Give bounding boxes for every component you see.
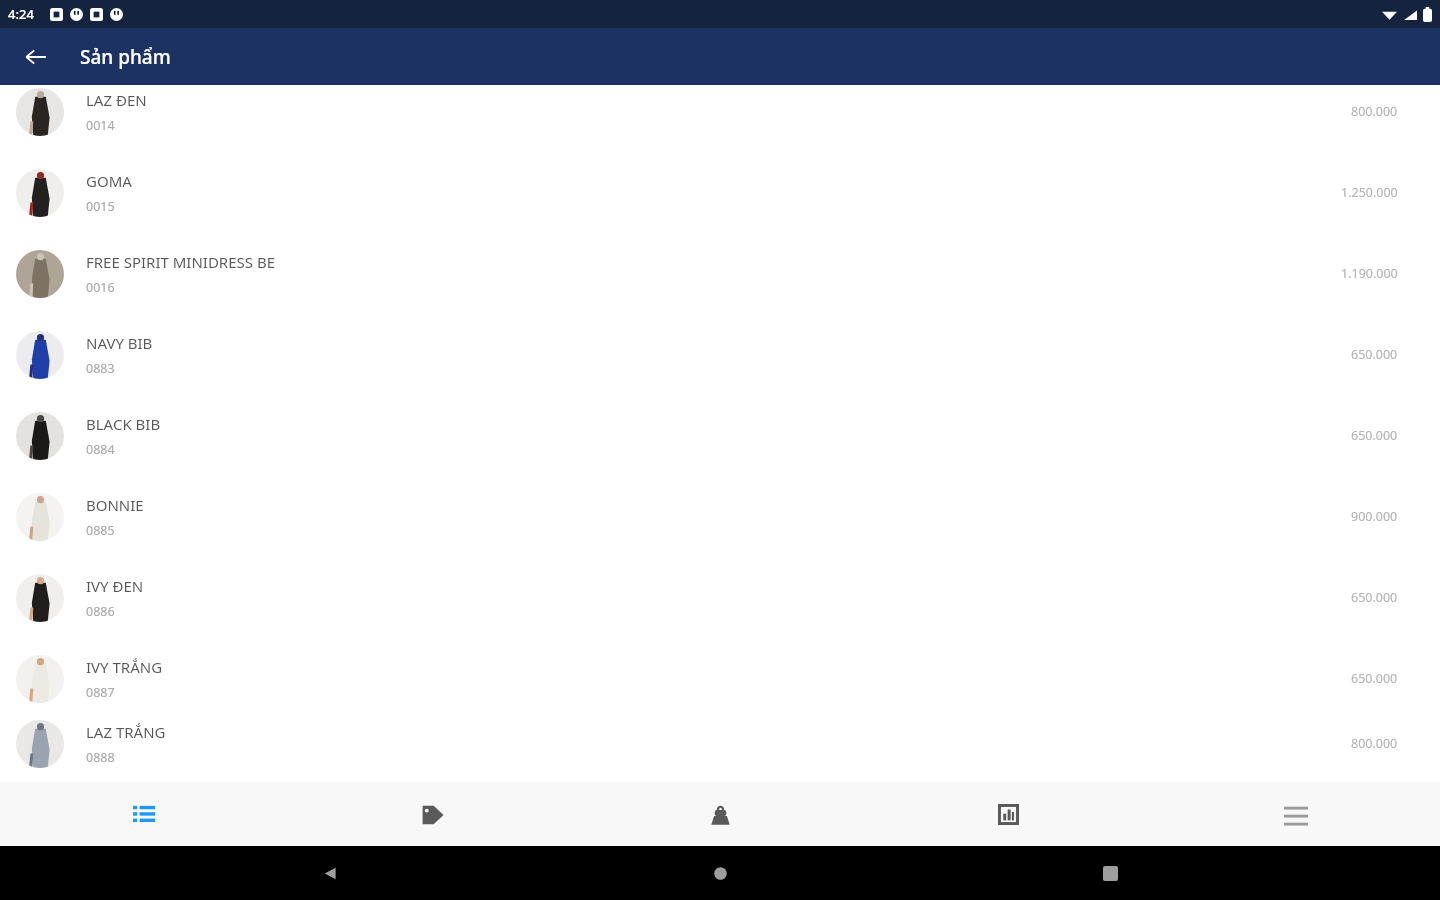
button[interactable]: GOMA [0, 152, 1440, 233]
staticText: 0014 [86, 117, 115, 134]
staticText: IVY TRẮNG [86, 657, 163, 677]
button[interactable]: LAZ TRẮNG [0, 719, 1440, 768]
staticText: 0887 [86, 684, 115, 701]
button[interactable]: Home [660, 846, 780, 900]
button[interactable]: BONNIE [0, 476, 1440, 557]
staticText: GOMA [86, 171, 132, 191]
staticText: 650.000 [1351, 346, 1398, 363]
staticText: 900.000 [1351, 508, 1398, 525]
staticText: FREE SPIRIT MINIDRESS BE [86, 252, 276, 272]
staticText: 0016 [86, 279, 115, 296]
staticText: BLACK BIB [86, 414, 161, 434]
button[interactable]: IVY ĐEN [0, 557, 1440, 638]
button[interactable]: Tags [288, 782, 576, 846]
button[interactable]: BLACK BIB [0, 395, 1440, 476]
staticText: 0885 [86, 522, 115, 539]
button[interactable]: Menu [1152, 782, 1440, 846]
staticText: 0883 [86, 360, 115, 377]
button[interactable]: NAVY BIB [0, 314, 1440, 395]
staticText: Sản phẩm [80, 44, 171, 70]
staticText: 650.000 [1351, 427, 1398, 444]
staticText: LAZ TRẮNG [86, 722, 166, 742]
staticText: 800.000 [1351, 735, 1398, 752]
staticText: 0015 [86, 198, 115, 215]
staticText: 650.000 [1351, 589, 1398, 606]
staticText: 0884 [86, 441, 115, 458]
staticText: 800.000 [1351, 103, 1398, 120]
staticText: IVY ĐEN [86, 576, 144, 596]
staticText: NAVY BIB [86, 333, 153, 353]
button[interactable]: LAZ ĐEN [0, 71, 1440, 152]
button[interactable]: Register [576, 782, 864, 846]
button[interactable]: Products [0, 782, 288, 846]
staticText: 4:24 [8, 5, 34, 23]
staticText: BONNIE [86, 495, 144, 515]
button[interactable]: Back [14, 35, 58, 79]
button[interactable]: Recents [1050, 846, 1170, 900]
button[interactable]: FREE SPIRIT MINIDRESS BE [0, 233, 1440, 314]
button[interactable]: Back [270, 846, 390, 900]
staticText: 1.190.000 [1341, 265, 1398, 282]
staticText: 0886 [86, 603, 115, 620]
staticText: 1.250.000 [1341, 184, 1398, 201]
staticText: LAZ ĐEN [86, 90, 147, 110]
staticText: 650.000 [1351, 670, 1398, 687]
button[interactable]: Reports [864, 782, 1152, 846]
staticText: 0888 [86, 749, 115, 766]
button[interactable]: IVY TRẮNG [0, 638, 1440, 719]
